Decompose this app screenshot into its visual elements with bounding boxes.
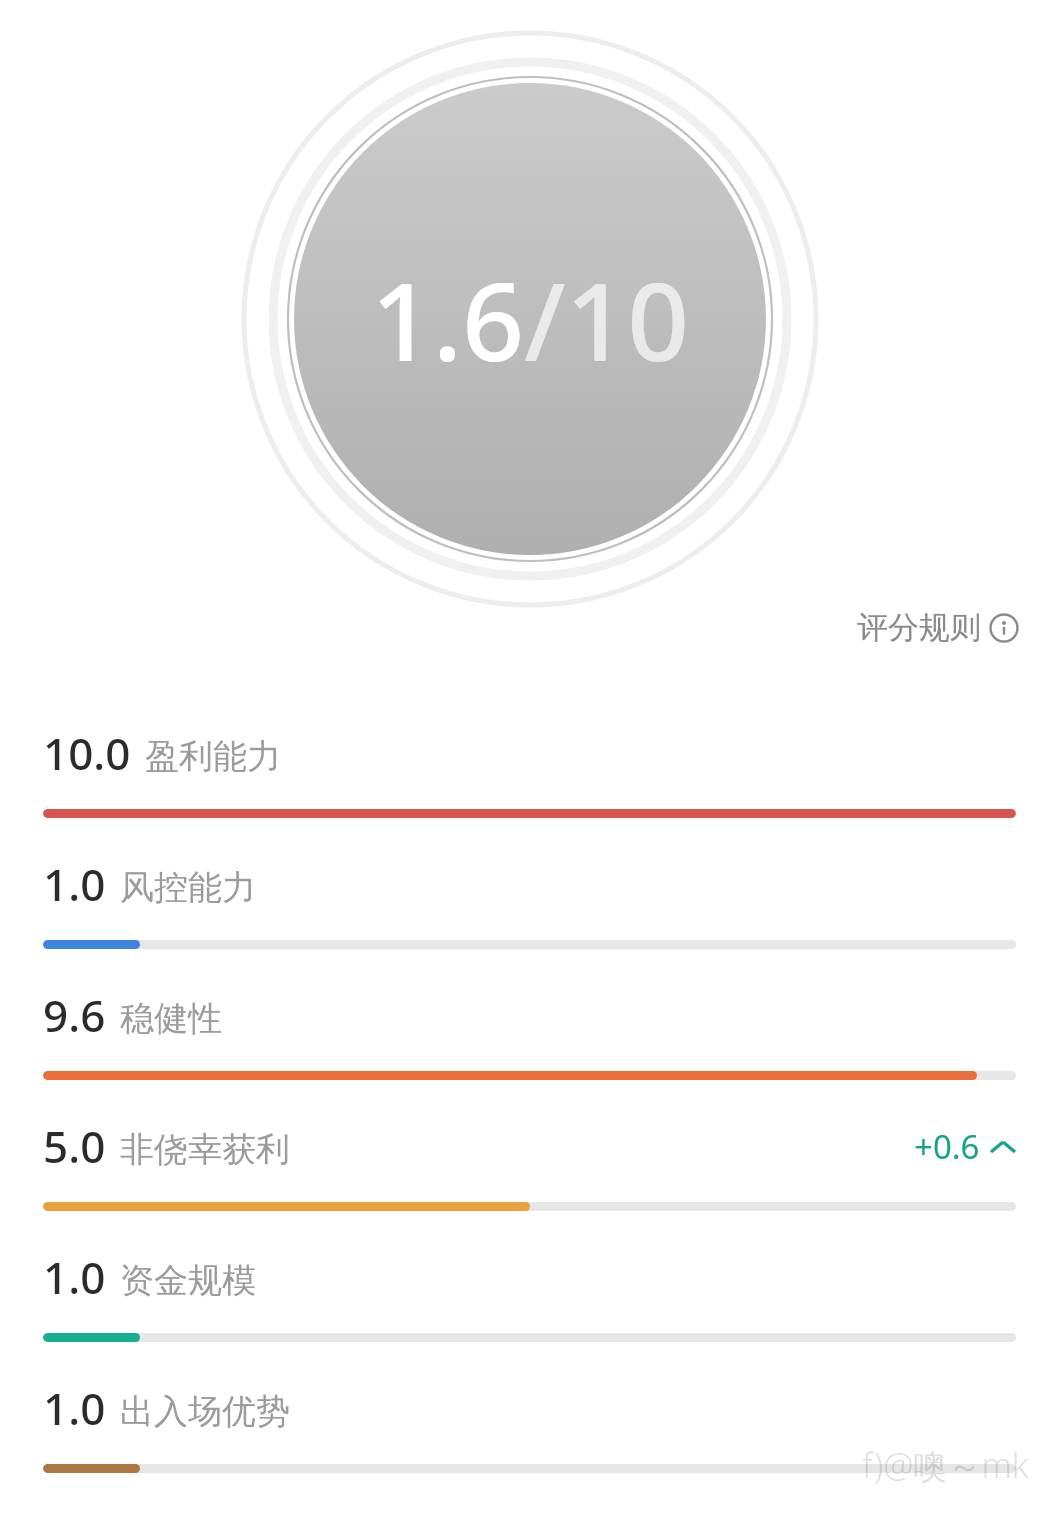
staticText: 盈利能力 bbox=[145, 735, 281, 778]
button[interactable]: 1.0 bbox=[0, 1378, 1059, 1509]
button[interactable]: 9.6 bbox=[0, 985, 1059, 1116]
staticText: 9.6 bbox=[43, 985, 106, 1045]
button[interactable]: 1.0 bbox=[0, 854, 1059, 985]
staticText: 1.0 bbox=[43, 854, 106, 914]
staticText: 非侥幸获利 bbox=[120, 1128, 290, 1171]
button[interactable]: 评分规则 bbox=[857, 608, 1019, 647]
staticText: f)@噢～mk bbox=[862, 1442, 1029, 1488]
staticText: 1.0 bbox=[43, 1378, 106, 1438]
staticText: 出入场优势 bbox=[120, 1390, 290, 1433]
button[interactable]: 综合评分 1.6 / 10 bbox=[241, 30, 819, 608]
staticText: 1.6 bbox=[371, 246, 524, 393]
staticText: 风控能力 bbox=[120, 866, 256, 909]
button[interactable]: 5.0 bbox=[0, 1116, 1059, 1247]
button[interactable]: 1.0 bbox=[0, 1247, 1059, 1378]
button[interactable]: 10.0 bbox=[0, 723, 1059, 854]
staticText: 1.0 bbox=[43, 1247, 106, 1307]
staticText: +0.6 bbox=[914, 1124, 980, 1169]
staticText: /10 bbox=[524, 246, 690, 393]
staticText: 10.0 bbox=[43, 723, 131, 783]
staticText: 5.0 bbox=[43, 1116, 106, 1176]
staticText: 稳健性 bbox=[120, 997, 222, 1040]
staticText: 评分规则 bbox=[857, 608, 981, 647]
staticText: 资金规模 bbox=[120, 1259, 256, 1302]
